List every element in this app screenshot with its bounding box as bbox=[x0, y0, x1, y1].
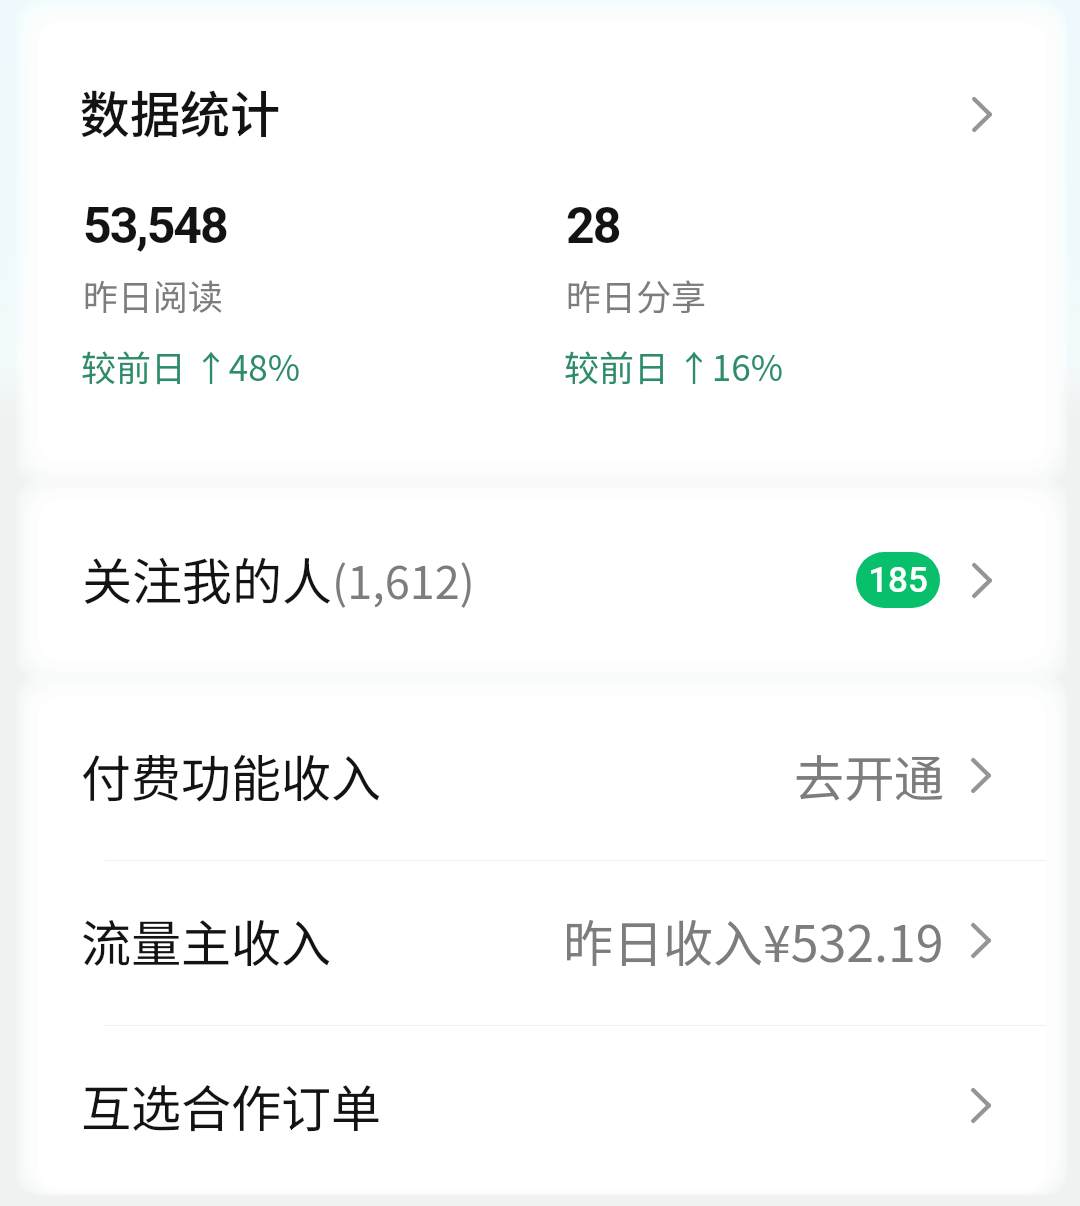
staticText: 付费功能收入 bbox=[81, 739, 381, 811]
button[interactable]: 关注我的人 bbox=[38, 500, 1046, 660]
staticText: 较前日 ↑48% bbox=[81, 340, 300, 391]
staticText: 关注我的人 bbox=[82, 542, 332, 614]
staticText: 互选合作订单 bbox=[81, 1069, 381, 1141]
button[interactable]: 付费功能收入 bbox=[38, 696, 1046, 860]
button[interactable]: 互选合作订单 bbox=[38, 1026, 1046, 1190]
staticText: 28 bbox=[566, 197, 620, 256]
staticText: 昨日分享 bbox=[566, 269, 707, 320]
staticText: 较前日 ↑16% bbox=[564, 340, 783, 391]
button[interactable]: 数据统计 bbox=[38, 22, 1046, 462]
staticText: 流量主收入 bbox=[81, 904, 331, 976]
staticText: 数据统计 bbox=[80, 75, 280, 147]
button[interactable]: 流量主收入 bbox=[38, 861, 1046, 1025]
other: 查看关注我的人 bbox=[972, 563, 992, 598]
staticText: 昨日收入¥532.19 bbox=[563, 904, 944, 976]
staticText: 去开通 bbox=[794, 739, 944, 811]
staticText: 昨日阅读 bbox=[83, 269, 224, 320]
other: 查看数据统计 bbox=[972, 97, 992, 132]
staticText: 185 bbox=[868, 560, 928, 601]
staticText: (1,612) bbox=[332, 547, 475, 612]
staticText: 53,548 bbox=[83, 197, 227, 256]
